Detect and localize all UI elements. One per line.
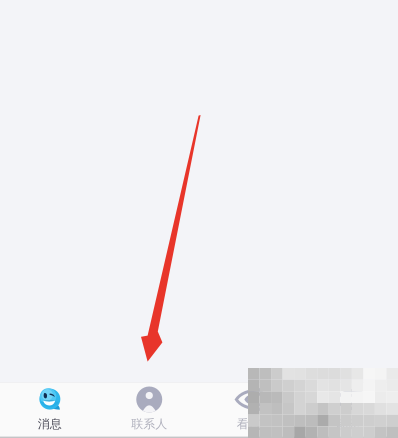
button[interactable]: 动态 <box>298 382 398 438</box>
button[interactable]: 消息 <box>0 382 99 438</box>
button[interactable]: 看点 <box>199 382 298 438</box>
staticText: 看点 <box>237 417 261 431</box>
staticText: 动态 <box>336 417 360 431</box>
staticText: 消息 <box>38 417 62 431</box>
staticText: 联系人 <box>131 417 167 431</box>
button[interactable]: 联系人 <box>99 382 199 438</box>
